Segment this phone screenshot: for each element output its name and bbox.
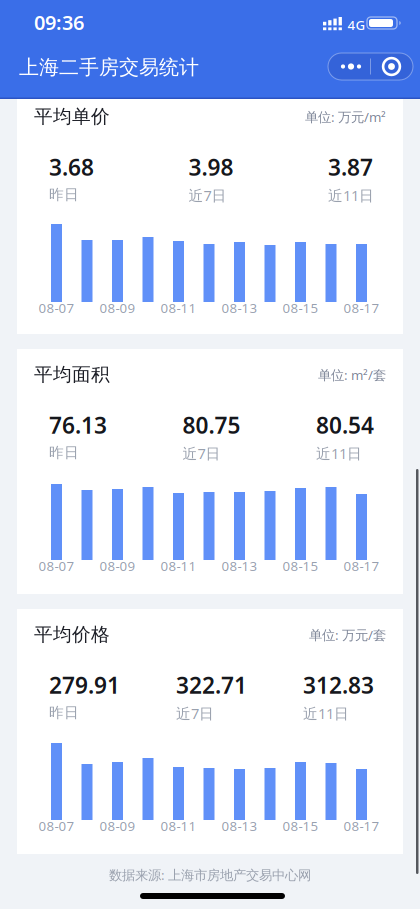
staticText: 单位: m²/套: [318, 366, 386, 384]
staticText: 08-11: [160, 817, 196, 835]
staticText: 08-11: [160, 299, 196, 317]
staticText: 08-17: [343, 299, 379, 317]
staticText: 80.54: [316, 410, 374, 440]
staticText: 08-09: [99, 817, 135, 835]
staticText: 上海二手房交易统计: [19, 55, 199, 80]
button[interactable]: 更多: [328, 53, 370, 80]
staticText: 3.98: [188, 152, 233, 182]
staticText: 3.68: [49, 152, 94, 182]
button[interactable]: 关闭小程序: [370, 53, 413, 80]
staticText: 数据来源: 上海市房地产交易中心网: [109, 866, 311, 884]
staticText: 昨日: [49, 186, 79, 204]
staticText: 322.71: [176, 670, 247, 700]
staticText: 09:36: [34, 9, 84, 36]
staticText: 08-07: [38, 557, 74, 575]
staticText: 312.83: [303, 670, 374, 700]
staticText: 近11日: [303, 704, 349, 723]
staticText: 08-11: [160, 557, 196, 575]
staticText: 08-13: [221, 299, 257, 317]
staticText: 08-07: [38, 299, 74, 317]
staticText: 279.91: [49, 670, 120, 700]
staticText: 08-15: [282, 557, 318, 575]
staticText: 单位: 万元/套: [309, 626, 386, 644]
staticText: 08-13: [221, 557, 257, 575]
staticText: 80.75: [182, 410, 240, 440]
staticText: 昨日: [49, 444, 79, 462]
staticText: 08-09: [99, 557, 135, 575]
staticText: 近7日: [188, 186, 226, 205]
staticText: 近11日: [316, 444, 362, 463]
staticText: 平均单价: [34, 105, 110, 128]
staticText: 08-13: [221, 817, 257, 835]
staticText: 单位: 万元/m²: [305, 108, 386, 126]
staticText: 76.13: [49, 410, 107, 440]
staticText: 平均面积: [34, 363, 110, 386]
staticText: 近7日: [176, 704, 214, 723]
staticText: 08-09: [99, 299, 135, 317]
staticText: 昨日: [49, 704, 79, 722]
staticText: 平均价格: [34, 623, 110, 646]
staticText: 近11日: [328, 186, 374, 205]
staticText: 4G: [347, 16, 365, 34]
staticText: 3.87: [328, 152, 373, 182]
staticText: 08-15: [282, 299, 318, 317]
staticText: 08-17: [343, 817, 379, 835]
staticText: 08-17: [343, 557, 379, 575]
staticText: 近7日: [182, 444, 220, 463]
staticText: 08-07: [38, 817, 74, 835]
staticText: 08-15: [282, 817, 318, 835]
